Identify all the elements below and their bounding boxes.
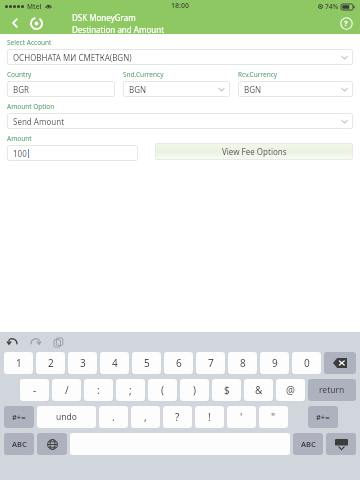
staticText: 8 — [240, 356, 246, 370]
button[interactable]: #+= — [308, 406, 338, 428]
button[interactable]: ABC — [293, 433, 323, 455]
button[interactable]: Change keyboard language — [37, 433, 67, 455]
button[interactable]: ; — [116, 379, 145, 401]
staticText: . — [112, 410, 115, 424]
button[interactable]: Back — [6, 14, 24, 32]
staticText: undo — [56, 411, 77, 423]
button[interactable]: " — [259, 406, 288, 428]
staticText: 100 — [13, 148, 27, 159]
staticText: 4 — [112, 356, 118, 370]
button[interactable]: return — [308, 379, 356, 401]
staticText: 5 — [144, 356, 150, 370]
staticText: BGN — [244, 84, 262, 95]
button[interactable]: 2 — [36, 352, 65, 374]
button[interactable]: Redo — [29, 336, 42, 349]
staticText: Amount — [7, 134, 32, 143]
staticText: Amount Option — [7, 102, 55, 111]
button[interactable]: #+= — [4, 406, 34, 428]
button[interactable]: , — [131, 406, 160, 428]
staticText: BGN — [129, 84, 147, 95]
staticText: 7 — [208, 356, 214, 370]
button[interactable]: $ — [212, 379, 241, 401]
button[interactable]: 7 — [196, 352, 225, 374]
staticText: 3 — [80, 356, 86, 370]
staticText: ? — [344, 18, 348, 28]
button[interactable]: 1 — [4, 352, 33, 374]
staticText: ABC — [12, 439, 27, 449]
button[interactable]: 5 — [132, 352, 161, 374]
button[interactable]: Paste — [52, 336, 65, 349]
button[interactable]: 0 — [292, 352, 321, 374]
button[interactable]: ( — [148, 379, 177, 401]
staticText: Country — [7, 70, 32, 79]
button[interactable]: 8 — [228, 352, 257, 374]
button[interactable]: ' — [227, 406, 256, 428]
staticText: 2 — [48, 356, 54, 370]
staticText: ! — [208, 410, 211, 424]
button[interactable]: View Fee Options — [155, 143, 353, 160]
staticText: Select Account — [7, 38, 52, 47]
button[interactable]: BGN — [123, 81, 230, 97]
button[interactable]: 3 — [68, 352, 97, 374]
staticText: $ — [224, 383, 230, 397]
staticText: Send Amount — [13, 116, 65, 127]
button[interactable]: ) — [180, 379, 209, 401]
staticText: 18:00 — [171, 1, 189, 11]
staticText: ABC — [301, 439, 316, 449]
button[interactable]: Send Amount — [7, 113, 353, 129]
staticText: ' — [240, 410, 243, 424]
button[interactable]: 6 — [164, 352, 193, 374]
staticText: Rcv.Currency — [238, 70, 278, 79]
staticText: & — [255, 383, 263, 397]
staticText: - — [33, 383, 37, 397]
staticText: 6 — [176, 356, 182, 370]
staticText: ( — [161, 383, 164, 397]
staticText: 0 — [304, 356, 310, 370]
staticText: 9 — [272, 356, 278, 370]
button[interactable]: . — [99, 406, 128, 428]
button[interactable]: 9 — [260, 352, 289, 374]
button[interactable]: BGR — [7, 81, 115, 97]
staticText: View Fee Options — [222, 146, 287, 157]
staticText: Mtel — [27, 2, 42, 11]
button[interactable]: Help — [337, 14, 355, 32]
staticText: return — [319, 384, 345, 396]
button[interactable]: : — [84, 379, 113, 401]
button[interactable]: - — [20, 379, 49, 401]
button[interactable]: & — [244, 379, 273, 401]
button[interactable]: ! — [195, 406, 224, 428]
staticText: ; — [129, 383, 132, 397]
staticText: 1 — [16, 356, 22, 370]
staticText: @ — [286, 383, 295, 397]
staticText: ОСНОВНАТА МИ СМЕТКА(BGN) — [13, 52, 132, 63]
button[interactable]: ABC — [4, 433, 34, 455]
button[interactable]: @ — [276, 379, 305, 401]
staticText: 74% — [325, 2, 339, 11]
staticText: ) — [193, 383, 196, 397]
button[interactable]: / — [52, 379, 81, 401]
staticText: #+= — [316, 412, 330, 422]
button[interactable]: Undo — [6, 336, 19, 349]
button[interactable]: 100 — [7, 145, 138, 161]
button[interactable]: BGN — [238, 81, 353, 97]
button[interactable]: 4 — [100, 352, 129, 374]
staticText: / — [65, 383, 69, 397]
staticText: , — [144, 410, 147, 424]
button[interactable]: ОСНОВНАТА МИ СМЕТКА(BGN) — [7, 49, 353, 65]
staticText: BGR — [13, 84, 29, 95]
staticText: #+= — [12, 412, 26, 422]
button[interactable]: ? — [163, 406, 192, 428]
staticText: DSK MoneyGram — [72, 12, 136, 23]
button[interactable]: Backspace — [324, 352, 356, 374]
staticText: Destination and Amount — [72, 24, 165, 34]
button[interactable]: Hide keyboard — [326, 433, 356, 455]
staticText: " — [271, 410, 276, 424]
button[interactable]: undo — [37, 406, 96, 428]
staticText: Snd.Currency — [123, 70, 164, 79]
staticText: : — [97, 383, 100, 397]
staticText: ? — [175, 410, 180, 424]
button[interactable]: MoneyGram logo — [26, 13, 46, 33]
